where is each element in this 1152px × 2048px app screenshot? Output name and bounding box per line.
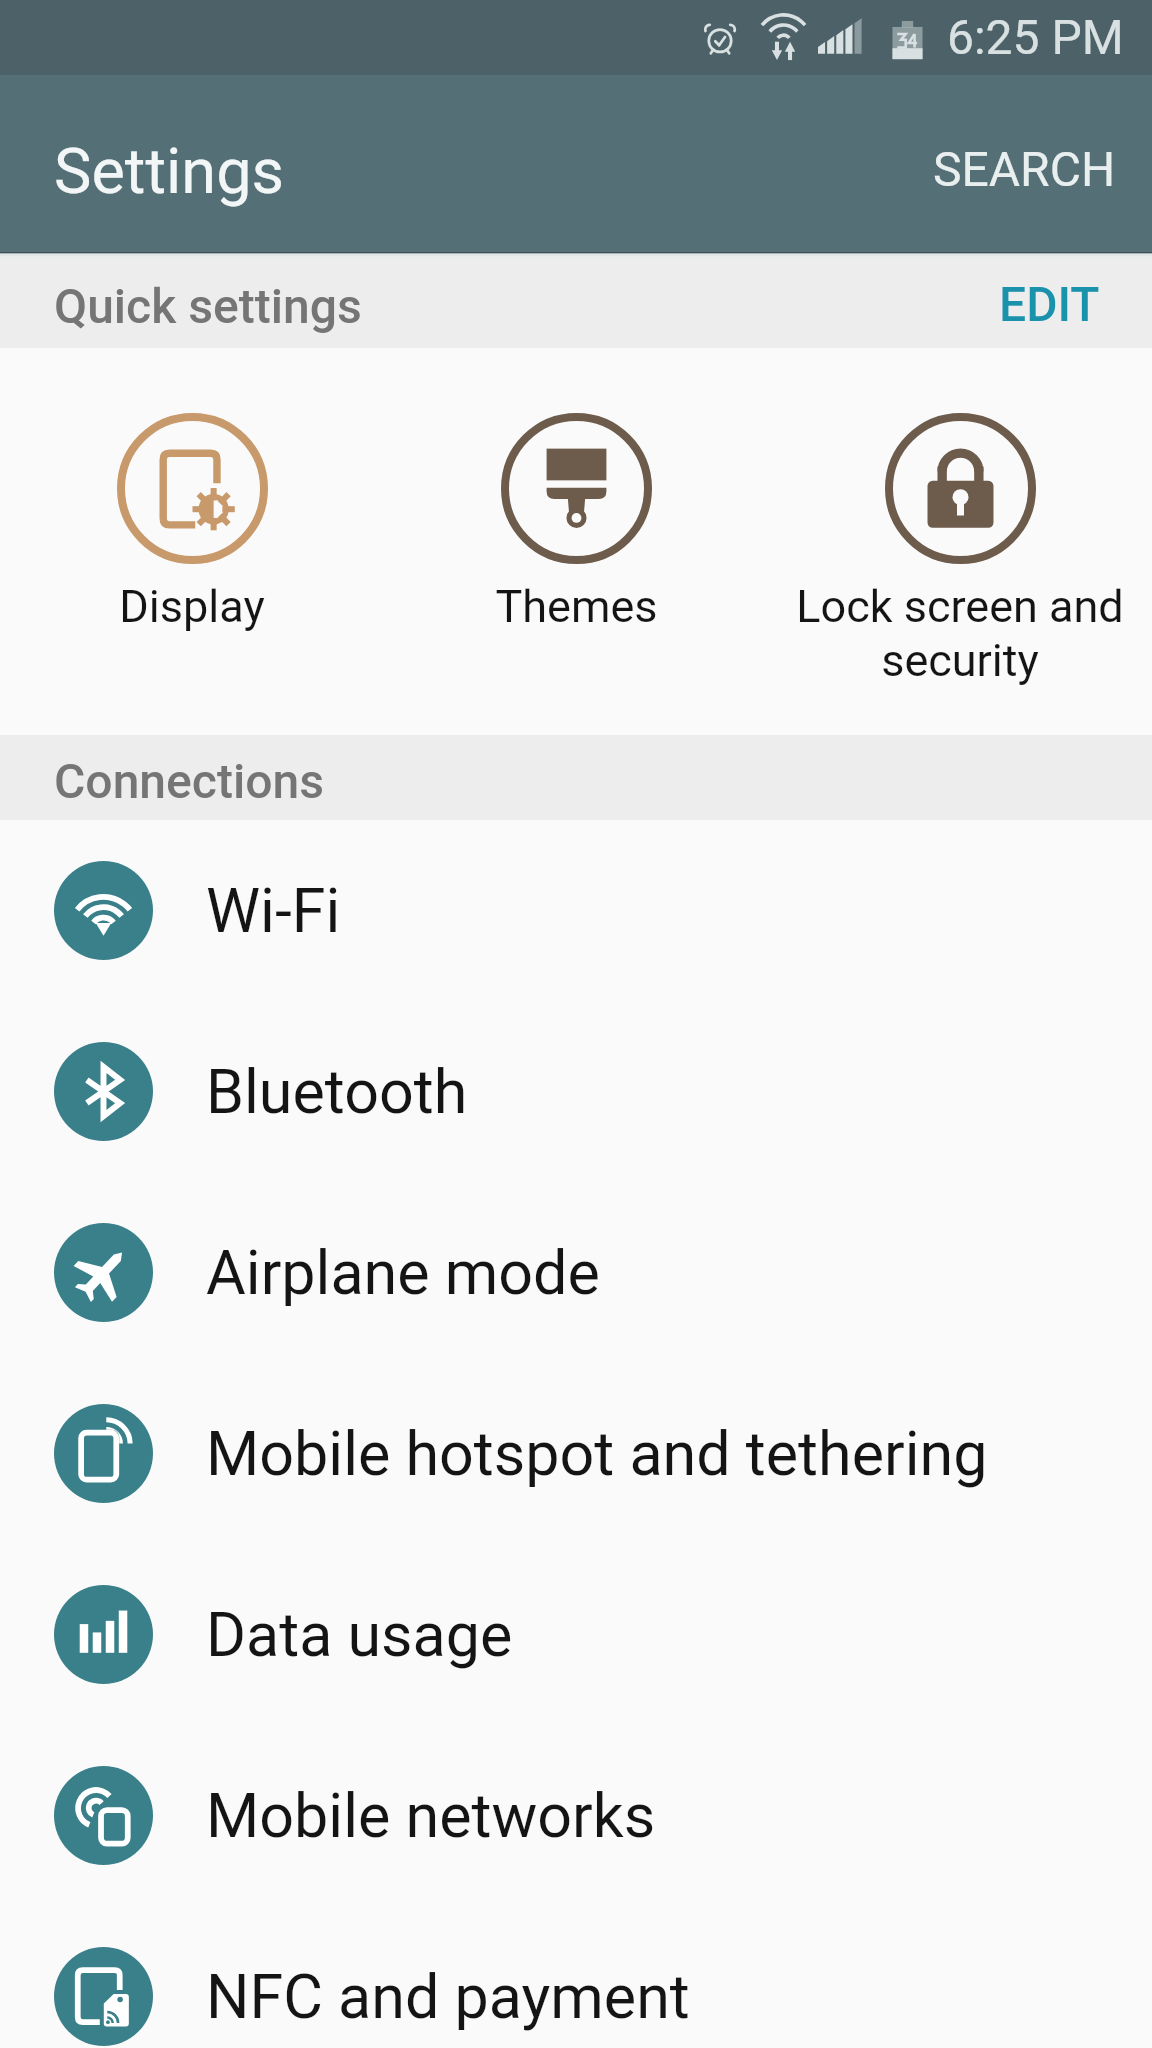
staticText: Display bbox=[119, 580, 265, 633]
staticText: Wi-Fi bbox=[206, 875, 341, 946]
other: Airplane mode bbox=[54, 1223, 153, 1322]
button[interactable]: Mobile hotspot and tethering bbox=[0, 1363, 1152, 1544]
other: Mobile networks bbox=[54, 1766, 153, 1865]
staticText: Airplane mode bbox=[206, 1237, 600, 1308]
staticText: Quick settings bbox=[54, 278, 362, 334]
staticText: Lock screen and security bbox=[782, 580, 1138, 687]
staticText: 6:25 PM bbox=[947, 9, 1124, 65]
button[interactable]: Bluetooth bbox=[0, 1001, 1152, 1182]
button[interactable]: Themes bbox=[384, 348, 768, 735]
staticText: SEARCH bbox=[933, 141, 1116, 197]
staticText: EDIT bbox=[999, 276, 1100, 330]
other: NFC and payment bbox=[54, 1947, 153, 2046]
other: Wi-Fi bbox=[54, 861, 153, 960]
button[interactable]: NFC and payment bbox=[0, 1906, 1152, 2048]
button[interactable]: SEARCH bbox=[887, 106, 1152, 222]
other: Data usage bbox=[54, 1585, 153, 1684]
staticText: Settings bbox=[54, 135, 285, 209]
button[interactable]: Airplane mode bbox=[0, 1182, 1152, 1363]
staticText: Connections bbox=[54, 753, 325, 809]
staticText: Mobile hotspot and tethering bbox=[206, 1418, 988, 1489]
button[interactable]: Display bbox=[0, 348, 384, 735]
button[interactable]: Data usage bbox=[0, 1544, 1152, 1725]
button[interactable]: Mobile networks bbox=[0, 1725, 1152, 1906]
staticText: Data usage bbox=[206, 1599, 513, 1670]
button[interactable]: Lock screen and security bbox=[768, 348, 1152, 735]
staticText: Bluetooth bbox=[206, 1056, 468, 1127]
staticText: Mobile networks bbox=[206, 1780, 656, 1851]
button[interactable]: Wi-Fi bbox=[0, 820, 1152, 1001]
other: Mobile hotspot and tethering bbox=[54, 1404, 153, 1503]
other: Bluetooth bbox=[54, 1042, 153, 1141]
staticText: NFC and payment bbox=[206, 1961, 690, 2032]
staticText: Themes bbox=[495, 580, 658, 633]
button[interactable]: EDIT bbox=[947, 258, 1152, 348]
